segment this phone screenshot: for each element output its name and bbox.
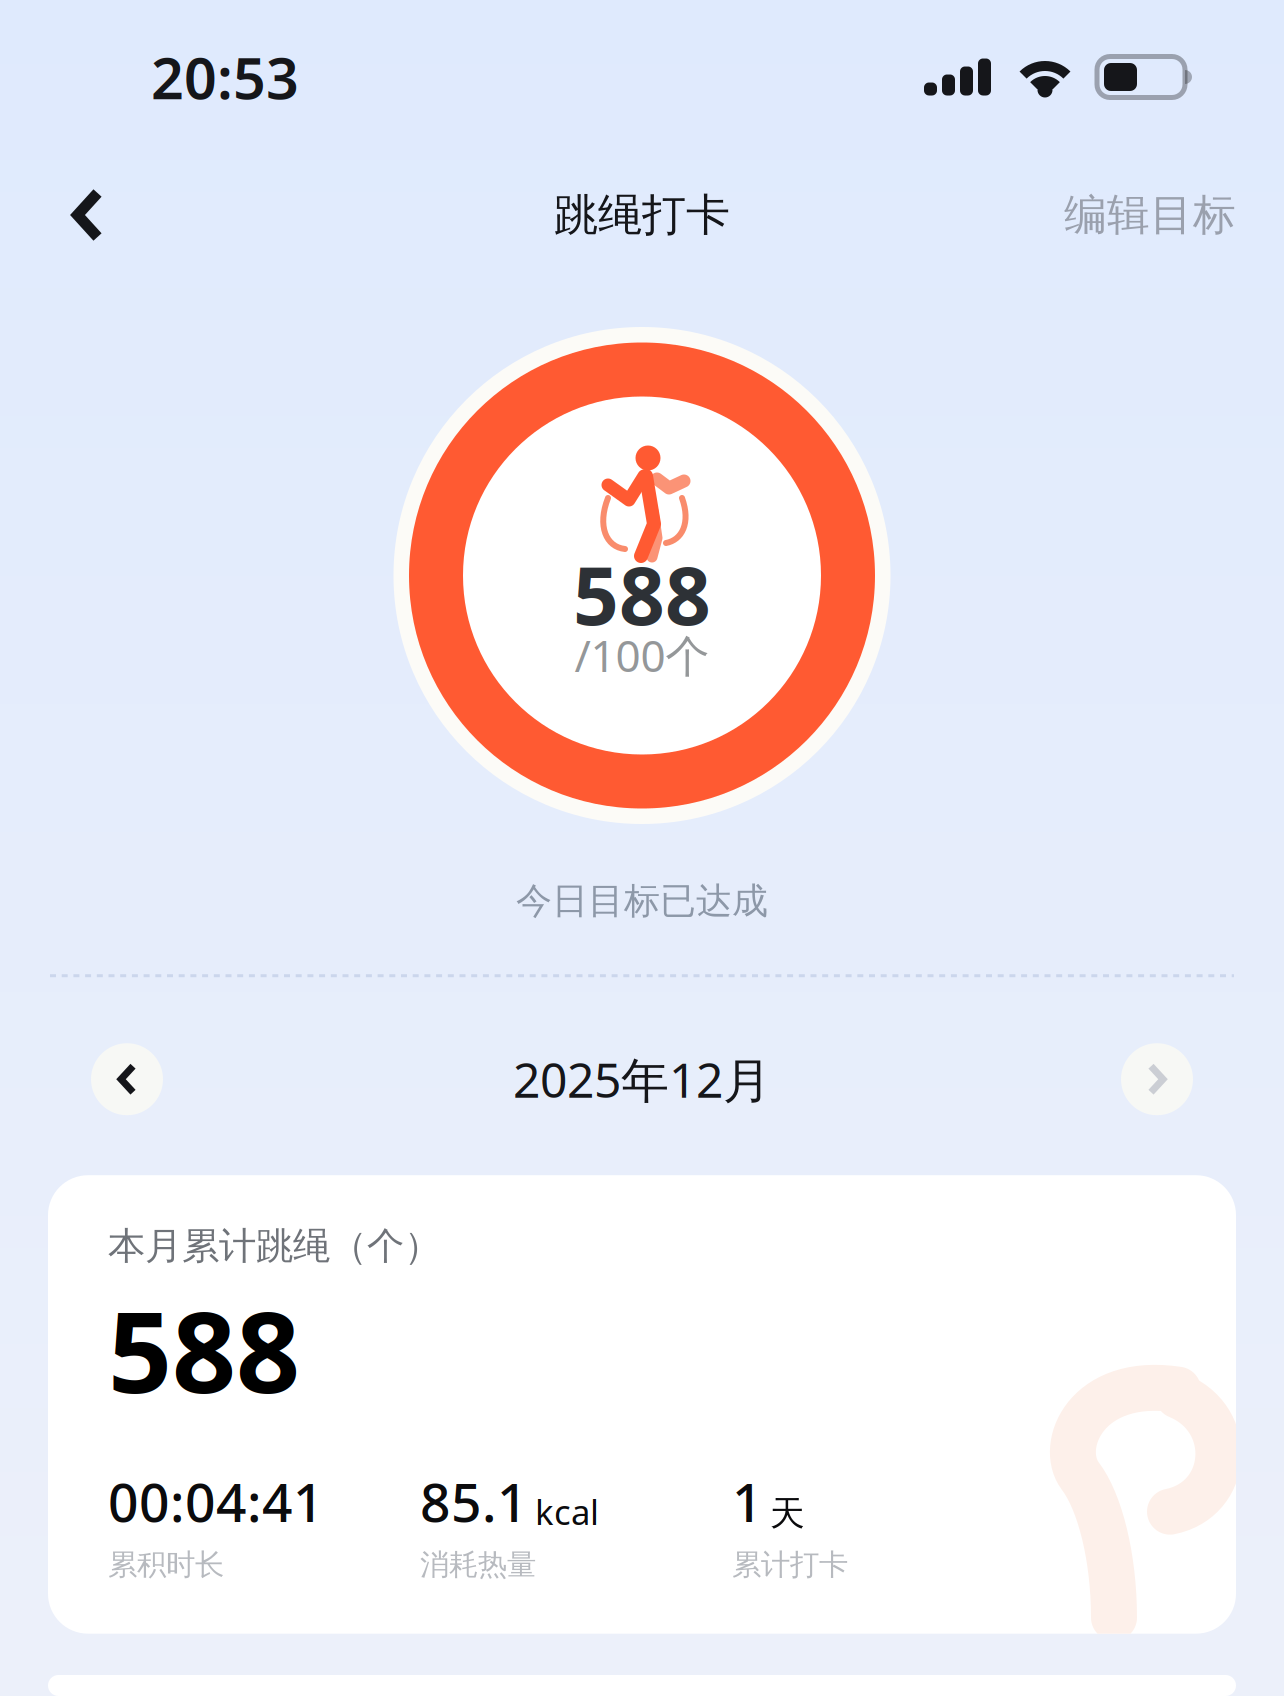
staticText: 累积时长 bbox=[108, 1547, 224, 1583]
staticText: 85.1 bbox=[420, 1466, 528, 1537]
staticText: 跳绳打卡 bbox=[554, 188, 730, 242]
staticText: 本月累计跳绳（个） bbox=[108, 1223, 441, 1269]
staticText: 20:53 bbox=[151, 39, 299, 115]
staticText: 588 bbox=[108, 1275, 300, 1424]
staticText: 1 bbox=[732, 1466, 763, 1537]
button[interactable]: 编辑目标 bbox=[1034, 170, 1284, 260]
staticText: 消耗热量 bbox=[420, 1547, 536, 1583]
staticText: 今日目标已达成 bbox=[516, 879, 768, 923]
staticText: 2025年12月 bbox=[513, 1047, 771, 1111]
staticText: 天 bbox=[770, 1492, 805, 1535]
button[interactable]: Previous month bbox=[91, 1043, 163, 1115]
button[interactable]: Back bbox=[0, 170, 143, 260]
button[interactable]: Next month bbox=[1121, 1043, 1193, 1115]
staticText: 00:04:41 bbox=[108, 1466, 324, 1537]
staticText: 588 bbox=[573, 541, 711, 647]
staticText: kcal bbox=[535, 1489, 599, 1535]
staticText: 累计打卡 bbox=[732, 1547, 848, 1583]
staticText: 编辑目标 bbox=[1064, 189, 1236, 241]
staticText: /100个 bbox=[574, 626, 709, 684]
